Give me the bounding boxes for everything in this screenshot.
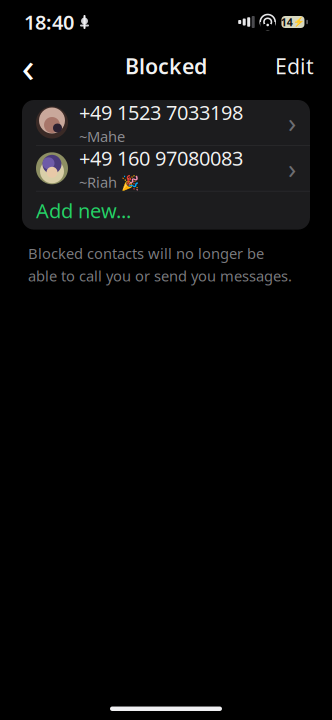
staticText: Edit (275, 52, 314, 80)
staticText: +49 1523 7033198 (79, 99, 243, 126)
button[interactable]: Add new... (22, 192, 310, 230)
staticText: ⚡ (293, 17, 305, 27)
staticText: 18:40 (24, 9, 74, 35)
staticText: Blocked (125, 52, 207, 80)
staticText: 14 (281, 15, 293, 29)
button[interactable]: Edit (263, 44, 326, 88)
staticText: Blocked contacts will no longer be able … (28, 244, 292, 286)
staticText: › (288, 105, 296, 140)
button[interactable]: Back (6, 44, 50, 88)
staticText: +49 160 97080083 (79, 145, 243, 171)
staticText: ~Riah 🎉 (79, 172, 139, 192)
staticText: ~Mahe (79, 126, 125, 146)
staticText: › (288, 151, 296, 186)
button[interactable]: +49 1523 7033198 (22, 100, 310, 145)
staticText: Add new... (36, 197, 131, 224)
button[interactable]: +49 160 97080083 (22, 146, 310, 191)
staticText: ‹ (21, 38, 34, 94)
